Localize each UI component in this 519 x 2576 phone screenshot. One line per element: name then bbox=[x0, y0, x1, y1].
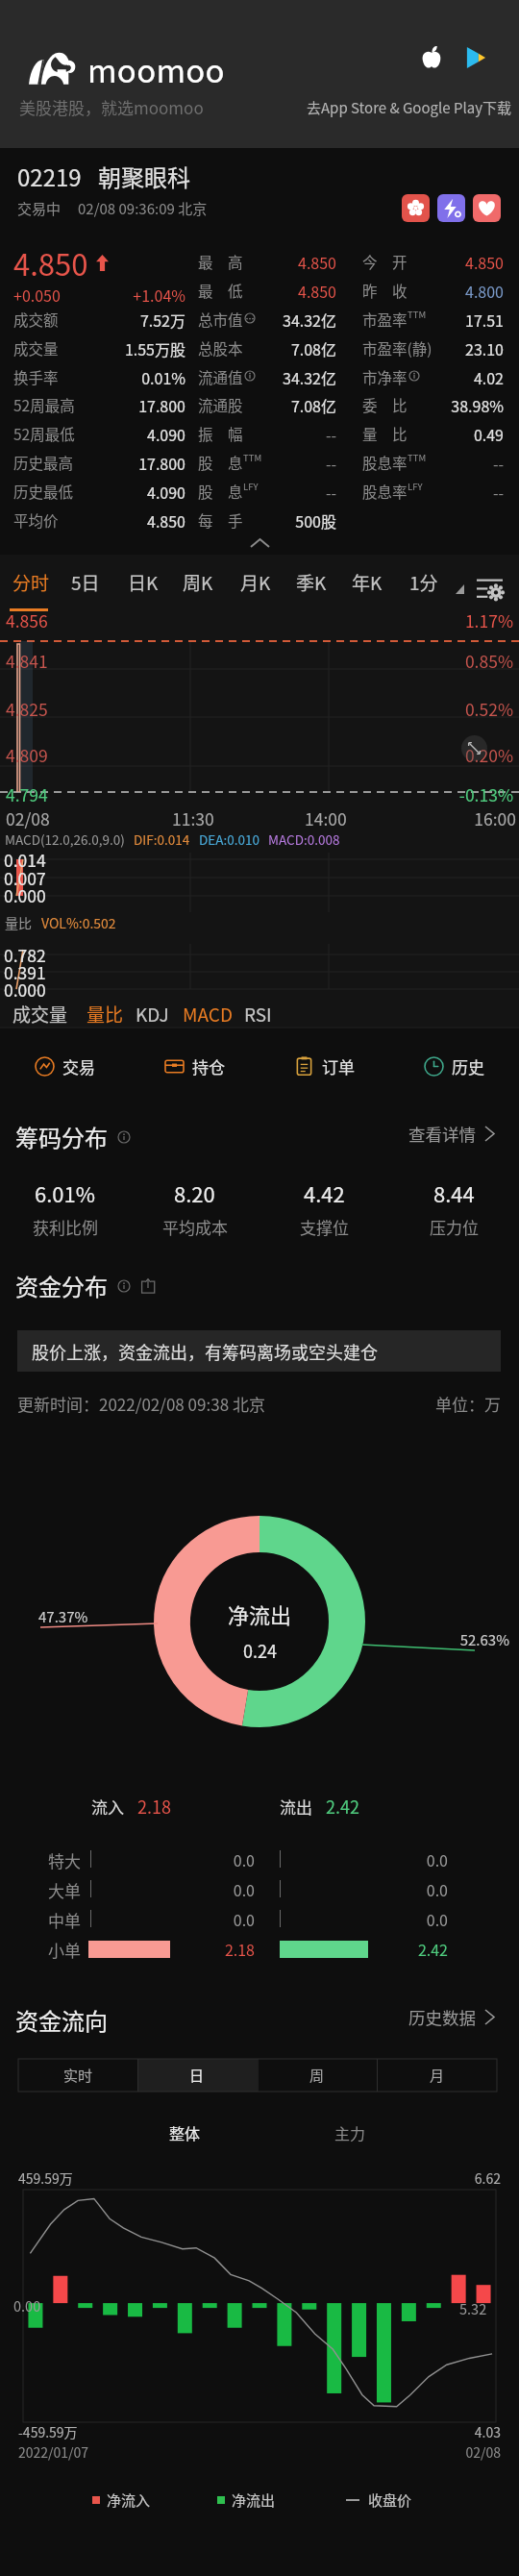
button[interactable]: 成交量 bbox=[12, 1001, 68, 1028]
button[interactable]: Collapse bbox=[231, 533, 288, 554]
staticText: 周 bbox=[309, 2065, 325, 2086]
staticText: 历史数据 bbox=[408, 2005, 476, 2029]
staticText: 昨 收 bbox=[362, 280, 408, 301]
button[interactable]: HK market bbox=[402, 194, 430, 222]
staticText: 获利比例 bbox=[33, 1215, 98, 1239]
staticText: 14:00 bbox=[305, 806, 347, 830]
staticText: 34.32亿 bbox=[0, 366, 336, 388]
staticText: 0.391 bbox=[4, 960, 46, 984]
button[interactable]: 历史 bbox=[389, 1028, 519, 1103]
staticText: 4.850 bbox=[0, 251, 504, 273]
button[interactable]: KDJ bbox=[136, 1001, 169, 1028]
staticText: 市净率 bbox=[362, 366, 408, 387]
staticText: 资金流向 bbox=[15, 2003, 108, 2037]
staticText: 4.090 bbox=[0, 481, 185, 503]
staticText: 订单 bbox=[322, 1054, 355, 1078]
button[interactable]: RSI bbox=[244, 1001, 272, 1028]
button[interactable]: 月K bbox=[240, 569, 271, 596]
button[interactable]: 周K bbox=[183, 569, 213, 596]
button[interactable]: 交易 bbox=[0, 1028, 130, 1103]
staticText: 0.24 bbox=[243, 1638, 277, 1663]
staticText: moomoo bbox=[87, 46, 225, 92]
button[interactable]: 周 bbox=[257, 2059, 377, 2092]
staticText: 4.856 bbox=[6, 608, 48, 632]
staticText: 02/08 09:36:09 北京 bbox=[78, 198, 208, 219]
staticText: 459.59万 bbox=[18, 2168, 73, 2188]
staticText: 量比 bbox=[5, 913, 32, 932]
staticText: 4.850 bbox=[0, 509, 185, 532]
staticText: 02/08 bbox=[0, 2442, 501, 2462]
staticText: 4.794 bbox=[6, 782, 48, 806]
staticText: 4.809 bbox=[6, 743, 48, 767]
staticText: 换手率 bbox=[13, 366, 59, 387]
button[interactable]: Level 2 quotes bbox=[437, 194, 465, 222]
button[interactable]: 持仓 bbox=[130, 1028, 259, 1103]
button[interactable]: 日 bbox=[137, 2059, 257, 2092]
staticText: 净流出 bbox=[228, 1598, 292, 1629]
staticText: 0.0 bbox=[0, 1878, 448, 1900]
button[interactable]: 季K bbox=[296, 569, 327, 596]
staticText: 4.850 bbox=[0, 251, 336, 273]
staticText: -- bbox=[0, 423, 336, 445]
button[interactable]: 5日 bbox=[71, 569, 100, 596]
staticText: -- bbox=[0, 481, 336, 503]
staticText: TTM bbox=[408, 308, 427, 321]
button[interactable]: Full screen bbox=[461, 735, 487, 761]
staticText: 4.800 bbox=[0, 280, 504, 302]
staticText: 股息率 bbox=[362, 452, 408, 473]
staticText: 历史最低 bbox=[13, 481, 74, 502]
staticText: 振 幅 bbox=[198, 423, 243, 444]
button[interactable]: Share bbox=[140, 1278, 156, 1294]
staticText: 16:00 bbox=[0, 806, 516, 830]
staticText: 1.17% bbox=[0, 608, 513, 632]
staticText: 特大 bbox=[48, 1848, 81, 1872]
staticText: 0.85% bbox=[0, 649, 513, 673]
staticText: DEA:0.010 bbox=[199, 830, 259, 849]
button[interactable]: App Store bbox=[420, 46, 487, 69]
staticText: 8.20 bbox=[174, 1177, 215, 1208]
staticText: 最 高 bbox=[198, 251, 243, 272]
staticText: 47.37% bbox=[38, 1606, 88, 1627]
staticText: -- bbox=[0, 452, 504, 474]
staticText: 0.0 bbox=[0, 1878, 255, 1900]
button[interactable]: 月 bbox=[377, 2059, 497, 2092]
button[interactable]: MACD bbox=[183, 1001, 233, 1028]
staticText: 17.51 bbox=[0, 309, 504, 331]
staticText: -0.13% bbox=[0, 782, 513, 806]
button[interactable]: 年K bbox=[352, 569, 383, 596]
staticText: 最 低 bbox=[198, 280, 243, 301]
staticText: 股价上涨，资金流出，有筹码离场或空头建仓 bbox=[32, 1339, 378, 1364]
staticText: 52周最低 bbox=[13, 423, 75, 444]
staticText: 52.63% bbox=[0, 1629, 509, 1650]
button[interactable]: 分时 bbox=[12, 569, 50, 596]
staticText: -- bbox=[0, 452, 336, 474]
button[interactable]: 整体 bbox=[169, 2121, 201, 2143]
staticText: 股 息 bbox=[198, 452, 243, 473]
staticText: 成交额 bbox=[13, 309, 59, 330]
staticText: 4.090 bbox=[0, 423, 185, 445]
button[interactable]: 历史数据 bbox=[408, 2005, 494, 2029]
staticText: 流入 bbox=[91, 1795, 124, 1819]
button[interactable]: 1分 bbox=[409, 569, 438, 596]
button[interactable]: 主力 bbox=[334, 2121, 366, 2143]
staticText: 4.850 bbox=[0, 280, 336, 302]
staticText: 平均成本 bbox=[162, 1215, 228, 1239]
button[interactable]: 日K bbox=[128, 569, 159, 596]
staticText: 0.0 bbox=[0, 1848, 448, 1870]
staticText: 1.55万股 bbox=[0, 337, 185, 359]
button[interactable]: 订单 bbox=[259, 1028, 389, 1103]
button[interactable]: Chart settings bbox=[477, 578, 503, 599]
staticText: 中单 bbox=[48, 1908, 81, 1932]
button[interactable]: 量比 bbox=[86, 1001, 124, 1028]
staticText: 8.44 bbox=[433, 1177, 475, 1208]
staticText: 筹码分布 bbox=[15, 1120, 108, 1153]
staticText: 4.42 bbox=[304, 1177, 345, 1208]
staticText: 委 比 bbox=[362, 394, 408, 415]
staticText: 净流入 bbox=[107, 2489, 151, 2511]
staticText: 今 开 bbox=[362, 251, 408, 272]
staticText: +0.050 bbox=[13, 284, 61, 306]
staticText: 市盈率(静) bbox=[362, 337, 432, 359]
button[interactable]: 实时 bbox=[18, 2059, 137, 2092]
button[interactable]: Add to watchlist bbox=[473, 194, 501, 222]
button[interactable]: 查看详情 bbox=[408, 1122, 494, 1146]
